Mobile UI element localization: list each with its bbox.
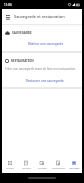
button[interactable]: Documents	[50, 156, 66, 173]
staticText: Réaliser une sauvegarde	[28, 42, 64, 46]
staticText: Restaurer une sauvegarde	[26, 79, 64, 83]
button[interactable]: Fichiers	[18, 156, 34, 173]
staticText: Fichiers	[22, 166, 31, 169]
staticText: RESTAURATION	[11, 59, 34, 63]
button[interactable]: Restaurer une sauvegarde	[25, 78, 65, 84]
button[interactable]: Réglages	[66, 156, 82, 173]
button[interactable]: Réaliser une sauvegarde	[27, 41, 65, 47]
staticText: Sauvegarde et restauration	[14, 14, 65, 19]
button[interactable]: Partage	[34, 156, 50, 173]
staticText: Accueil	[6, 166, 14, 169]
button[interactable]: Accueil	[2, 156, 18, 173]
staticText: Réglages	[69, 166, 80, 169]
staticText: Documents	[52, 166, 65, 169]
staticText: Partage	[38, 166, 47, 169]
staticText: Créer une sauvegarde avant de faire une …	[5, 67, 77, 71]
staticText: SAUVEGARDE	[12, 31, 32, 35]
staticText: 11:06	[4, 3, 12, 7]
button[interactable]: Menu	[2, 9, 14, 24]
